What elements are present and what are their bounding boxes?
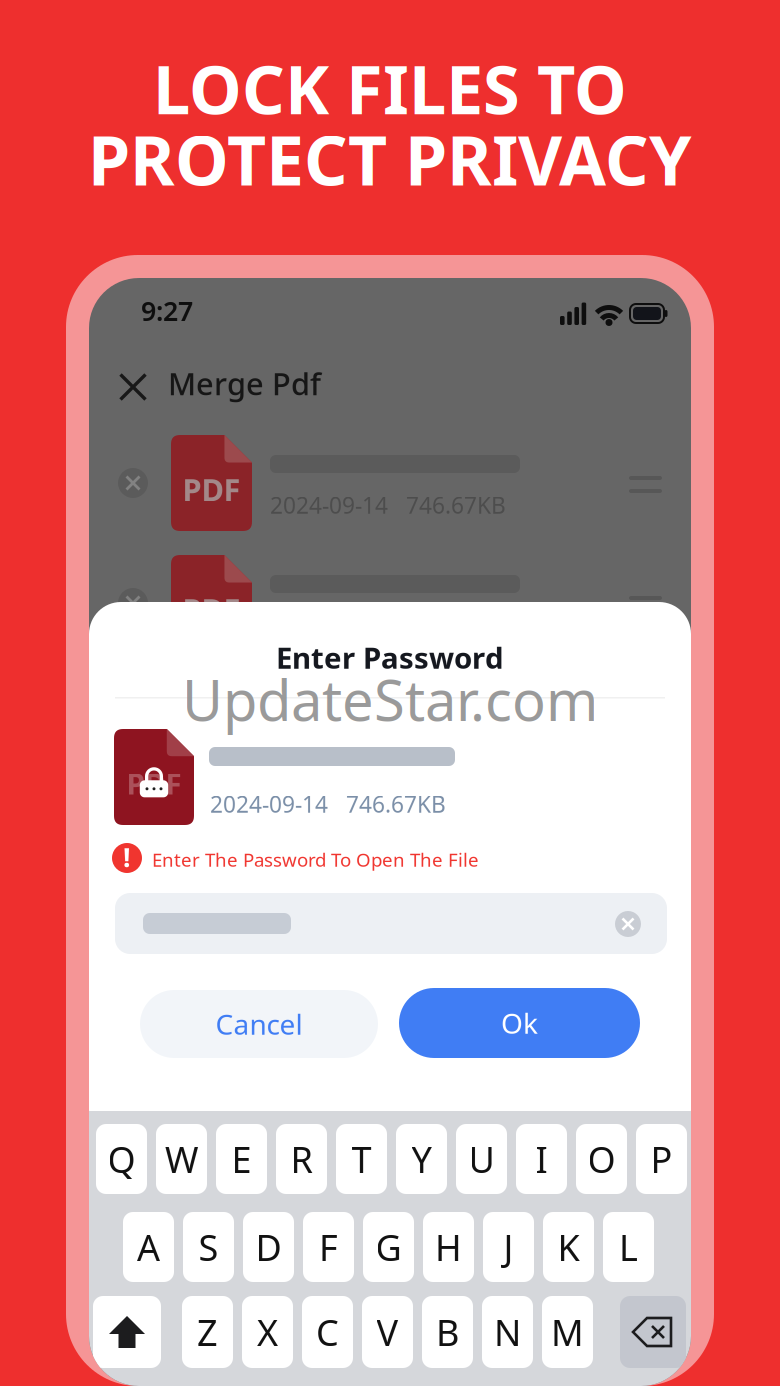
button[interactable]: Backspace [620,1296,686,1368]
staticText: LOCK FILES TO [153,44,627,132]
button[interactable]: T [336,1124,387,1194]
button[interactable]: Cancel [140,990,378,1058]
staticText: PROTECT PRIVACY [88,114,692,204]
staticText: Ok [501,1004,538,1042]
button[interactable]: Q [96,1124,147,1194]
button[interactable]: N [482,1296,533,1368]
staticText: A [137,1223,160,1271]
staticText: E [231,1135,251,1183]
staticText: 2024-09-14 746.67KB [270,490,506,520]
staticText: Merge Pdf [168,363,321,404]
staticText: F [319,1223,338,1271]
staticText: N [494,1308,521,1356]
staticText: L [619,1223,638,1271]
button[interactable]: Remove file [118,468,148,498]
button[interactable]: Z [182,1296,233,1368]
staticText: S [198,1223,218,1271]
button[interactable]: Close [109,363,157,411]
staticText: B [436,1308,459,1356]
staticText: J [503,1223,513,1271]
staticText: 2024-09-14 746.67KB [210,789,446,819]
staticText: G [375,1223,401,1271]
staticText: M [551,1308,584,1356]
staticText: PDF [182,589,240,630]
button[interactable]: O [576,1124,627,1194]
button[interactable]: Remove file [118,588,148,618]
staticText: X [257,1308,278,1356]
staticText: UpdateStar.com [182,662,598,736]
button[interactable]: D [243,1212,294,1282]
staticText: U [468,1135,494,1183]
button[interactable]: L [603,1212,654,1282]
staticText: ! [123,839,131,875]
staticText: C [316,1308,339,1356]
staticText: PDF [126,764,181,803]
button[interactable]: E [216,1124,267,1194]
button[interactable]: J [483,1212,534,1282]
staticText: D [255,1223,281,1271]
button[interactable]: M [542,1296,593,1368]
staticText: V [376,1308,398,1356]
staticText: Z [197,1308,218,1356]
staticText: H [435,1223,462,1271]
staticText: Cancel [215,1005,302,1043]
button[interactable]: Y [396,1124,447,1194]
button[interactable]: R [276,1124,327,1194]
button[interactable]: K [543,1212,594,1282]
button[interactable]: H [423,1212,474,1282]
button[interactable]: G [363,1212,414,1282]
button[interactable]: P [636,1124,687,1194]
button[interactable]: Shift [93,1296,161,1368]
staticText: O [587,1135,615,1183]
button[interactable]: Ok [399,988,640,1058]
staticText: PDF [182,469,240,510]
staticText: K [557,1223,579,1271]
staticText: 9:27 [141,293,193,328]
staticText: Enter The Password To Open The File [152,847,479,872]
staticText: Y [411,1135,431,1183]
staticText: R [290,1135,312,1183]
button[interactable]: F [303,1212,354,1282]
button[interactable]: I [516,1124,567,1194]
staticText: I [535,1135,547,1183]
staticText: P [650,1135,672,1183]
staticText: T [351,1135,371,1183]
button[interactable]: C [302,1296,353,1368]
button[interactable]: V [362,1296,413,1368]
button[interactable]: S [183,1212,234,1282]
button[interactable]: X [242,1296,293,1368]
button[interactable]: U [456,1124,507,1194]
staticText: Enter Password [276,638,504,677]
staticText: Q [107,1135,135,1183]
button[interactable]: W [156,1124,207,1194]
button[interactable]: A [123,1212,174,1282]
button[interactable]: B [422,1296,473,1368]
staticText: W [165,1135,198,1183]
